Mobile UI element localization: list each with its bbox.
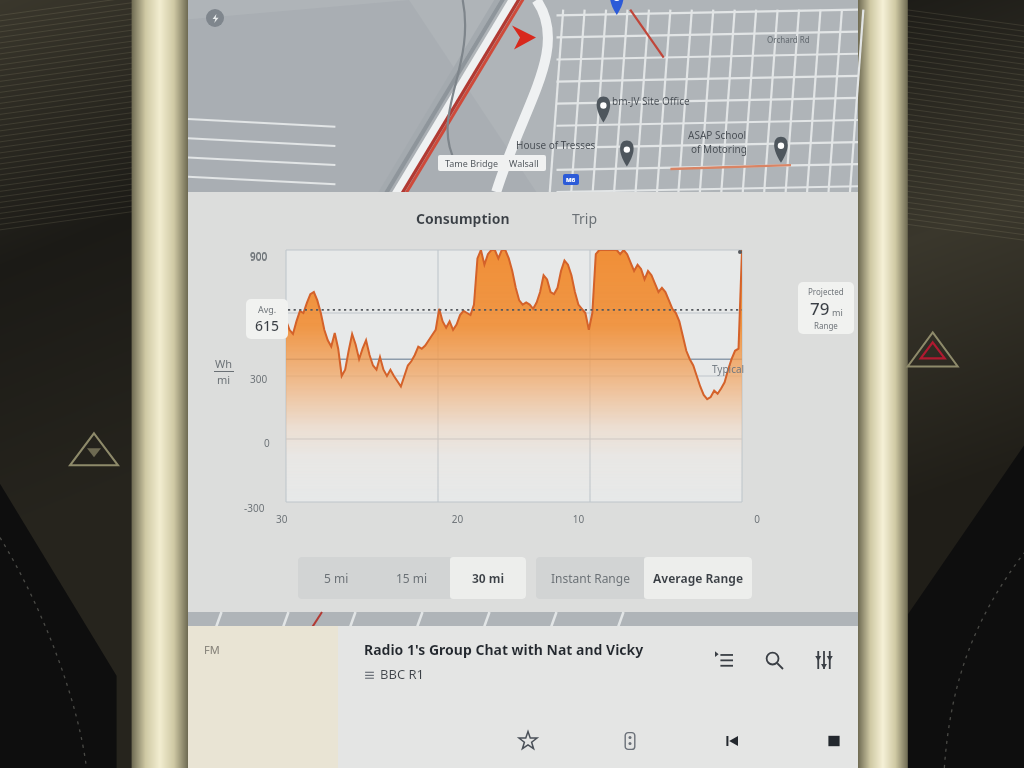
- staticText: Radio 1's Group Chat with Nat and Vicky: [364, 640, 644, 659]
- button[interactable]: Average Range: [644, 557, 752, 599]
- staticText: Projected: [808, 286, 844, 297]
- staticText: Avg.: [258, 303, 277, 315]
- button[interactable]: Previous: [712, 721, 752, 761]
- staticText: -300: [244, 501, 265, 515]
- staticText: 0: [264, 436, 270, 450]
- button[interactable]: Stop: [814, 721, 854, 761]
- staticText: Average Range: [653, 570, 744, 586]
- staticText: Range: [814, 320, 838, 331]
- staticText: bm-JV Site Office: [612, 94, 690, 108]
- staticText: Trip: [572, 209, 598, 228]
- button[interactable]: Source: [610, 721, 650, 761]
- button[interactable]: 5 mi: [298, 557, 374, 599]
- staticText: 900: [250, 249, 268, 263]
- staticText: 20: [397, 512, 518, 526]
- button[interactable]: 30 mi: [450, 557, 526, 599]
- staticText: 30: [276, 512, 397, 526]
- staticText: mi: [217, 372, 231, 387]
- staticText: 15 mi: [396, 570, 428, 586]
- staticText: House of Tresses: [516, 138, 596, 152]
- staticText: 600: [250, 320, 268, 334]
- staticText: ASAP School: [688, 128, 747, 142]
- staticText: 900: [250, 250, 268, 264]
- staticText: Instant Range: [551, 570, 630, 586]
- button[interactable]: Playlist: [706, 642, 742, 678]
- staticText: M6: [566, 176, 576, 184]
- staticText: Orchard Rd: [767, 34, 810, 45]
- button[interactable]: Search: [756, 642, 792, 678]
- staticText: 5 mi: [324, 570, 349, 586]
- staticText: Typical: [712, 362, 745, 376]
- staticText: 79: [810, 297, 830, 320]
- staticText: 30 mi: [472, 570, 505, 586]
- button[interactable]: Consumption: [410, 203, 516, 234]
- button[interactable]: FM: [188, 626, 338, 768]
- button[interactable]: Favourite: [508, 721, 548, 761]
- staticText: 615: [255, 316, 280, 335]
- staticText: 10: [518, 512, 639, 526]
- staticText: 300: [250, 372, 268, 386]
- staticText: BBC R1: [380, 665, 425, 683]
- staticText: Consumption: [416, 209, 510, 228]
- button[interactable]: Equalizer: [806, 642, 842, 678]
- button[interactable]: Trip: [566, 203, 604, 234]
- staticText: Walsall: [509, 157, 539, 169]
- staticText: of Motoring: [691, 142, 747, 156]
- staticText: mi: [832, 306, 843, 318]
- staticText: Tame Bridge: [445, 157, 499, 169]
- staticText: Wh: [215, 356, 233, 371]
- button[interactable]: 15 mi: [374, 557, 450, 599]
- staticText: 0: [639, 512, 760, 526]
- staticText: FM: [204, 642, 220, 657]
- button[interactable]: Charging: [206, 9, 224, 27]
- button[interactable]: Instant Range: [536, 557, 644, 599]
